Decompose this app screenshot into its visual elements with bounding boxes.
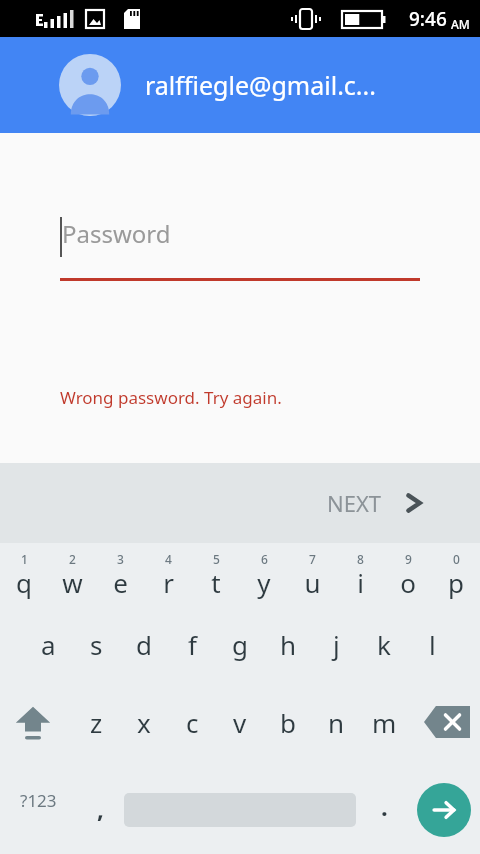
- staticText: 7: [309, 551, 316, 567]
- staticText: o: [400, 565, 416, 600]
- button[interactable]: 3: [96, 543, 144, 605]
- button[interactable]: 7: [288, 543, 336, 605]
- staticText: 4: [165, 551, 172, 567]
- button[interactable]: j: [312, 605, 360, 683]
- button[interactable]: 2: [48, 543, 96, 605]
- button[interactable]: 0: [432, 543, 480, 605]
- staticText: 1: [21, 551, 28, 567]
- staticText: Forgot password?: [60, 458, 244, 488]
- staticText: 5: [213, 551, 220, 567]
- staticText: n: [328, 705, 345, 740]
- staticText: 9: [405, 551, 412, 567]
- staticText: d: [136, 627, 152, 662]
- staticText: c: [186, 705, 199, 740]
- button[interactable]: ?123: [0, 761, 76, 839]
- staticText: 2: [69, 551, 76, 567]
- button[interactable]: n: [312, 683, 360, 761]
- staticText: v: [233, 705, 247, 740]
- button[interactable]: b: [264, 683, 312, 761]
- staticText: NEXT: [327, 488, 382, 518]
- staticText: t: [211, 565, 221, 600]
- staticText: i: [357, 565, 364, 600]
- staticText: .: [381, 790, 388, 823]
- button[interactable]: 1: [0, 543, 48, 605]
- staticText: r: [163, 565, 174, 600]
- staticText: g: [232, 627, 248, 662]
- button[interactable]: 9: [384, 543, 432, 605]
- staticText: 8: [357, 551, 364, 567]
- staticText: AM: [451, 16, 470, 32]
- staticText: ,: [97, 792, 104, 825]
- staticText: Password: [62, 217, 171, 250]
- button[interactable]: s: [72, 605, 120, 683]
- button[interactable]: 6: [240, 543, 288, 605]
- staticText: u: [304, 565, 321, 600]
- button[interactable]: h: [264, 605, 312, 683]
- staticText: f: [188, 627, 197, 662]
- staticText: Wrong password. Try again.: [60, 386, 282, 409]
- button[interactable]: ralffiegle@gmail.c...: [0, 37, 480, 133]
- button[interactable]: x: [120, 683, 168, 761]
- staticText: a: [41, 627, 56, 662]
- button[interactable]: d: [120, 605, 168, 683]
- staticText: h: [280, 627, 297, 662]
- staticText: 6: [261, 551, 268, 567]
- staticText: w: [62, 565, 83, 600]
- button[interactable]: v: [216, 683, 264, 761]
- staticText: s: [90, 627, 103, 662]
- staticText: m: [372, 705, 397, 740]
- staticText: 3: [117, 551, 124, 567]
- button[interactable]: f: [168, 605, 216, 683]
- button[interactable]: 8: [336, 543, 384, 605]
- staticText: 9:46: [409, 6, 447, 32]
- staticText: ralffiegle@gmail.c...: [145, 68, 376, 102]
- button[interactable]: Password: [60, 205, 420, 261]
- button[interactable]: l: [408, 605, 456, 683]
- staticText: b: [280, 705, 296, 740]
- button[interactable]: ,: [76, 761, 124, 839]
- button[interactable]: Shift: [0, 683, 66, 761]
- button[interactable]: Backspace: [414, 683, 480, 761]
- staticText: 0: [453, 551, 460, 567]
- staticText: e: [113, 565, 128, 600]
- button[interactable]: c: [168, 683, 216, 761]
- button[interactable]: g: [216, 605, 264, 683]
- button[interactable]: Forgot password?: [60, 458, 244, 488]
- staticText: l: [429, 627, 436, 662]
- button[interactable]: Enter: [417, 783, 471, 837]
- button[interactable]: k: [360, 605, 408, 683]
- staticText: j: [333, 627, 340, 662]
- staticText: x: [137, 705, 151, 740]
- staticText: q: [16, 565, 32, 600]
- staticText: y: [257, 565, 271, 600]
- button[interactable]: .: [360, 761, 408, 839]
- button[interactable]: z: [72, 683, 120, 761]
- button[interactable]: 5: [192, 543, 240, 605]
- staticText: z: [90, 705, 103, 740]
- staticText: p: [448, 565, 464, 600]
- staticText: ?123: [20, 789, 57, 812]
- button[interactable]: m: [360, 683, 408, 761]
- button[interactable]: NEXT: [327, 488, 424, 518]
- staticText: k: [377, 627, 391, 662]
- button[interactable]: a: [24, 605, 72, 683]
- button[interactable]: 4: [144, 543, 192, 605]
